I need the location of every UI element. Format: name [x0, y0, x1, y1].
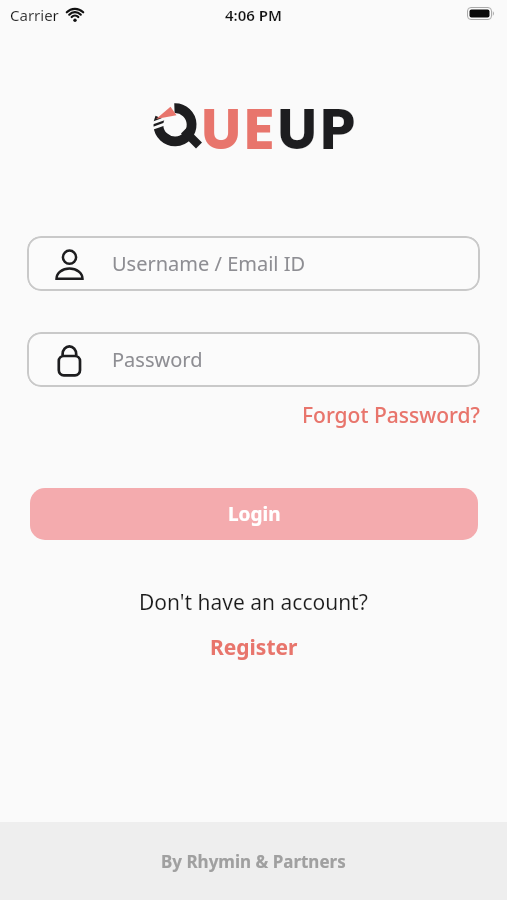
- button[interactable]: Forgot Password?: [302, 401, 480, 430]
- button[interactable]: Password: [27, 332, 480, 387]
- staticText: Password: [112, 346, 203, 373]
- staticText: Forgot Password?: [302, 401, 480, 430]
- staticText: Carrier: [10, 5, 59, 25]
- staticText: Register: [210, 633, 298, 662]
- staticText: By Rhymin & Partners: [161, 850, 346, 873]
- button[interactable]: Register: [210, 633, 298, 662]
- button[interactable]: Username / Email ID: [27, 236, 480, 291]
- staticText: UEUP: [201, 89, 358, 169]
- staticText: Login: [228, 501, 281, 527]
- staticText: Don't have an account?: [139, 588, 368, 617]
- staticText: Username / Email ID: [112, 250, 306, 277]
- staticText: 4:06 PM: [225, 5, 282, 25]
- button[interactable]: Login: [30, 488, 478, 540]
